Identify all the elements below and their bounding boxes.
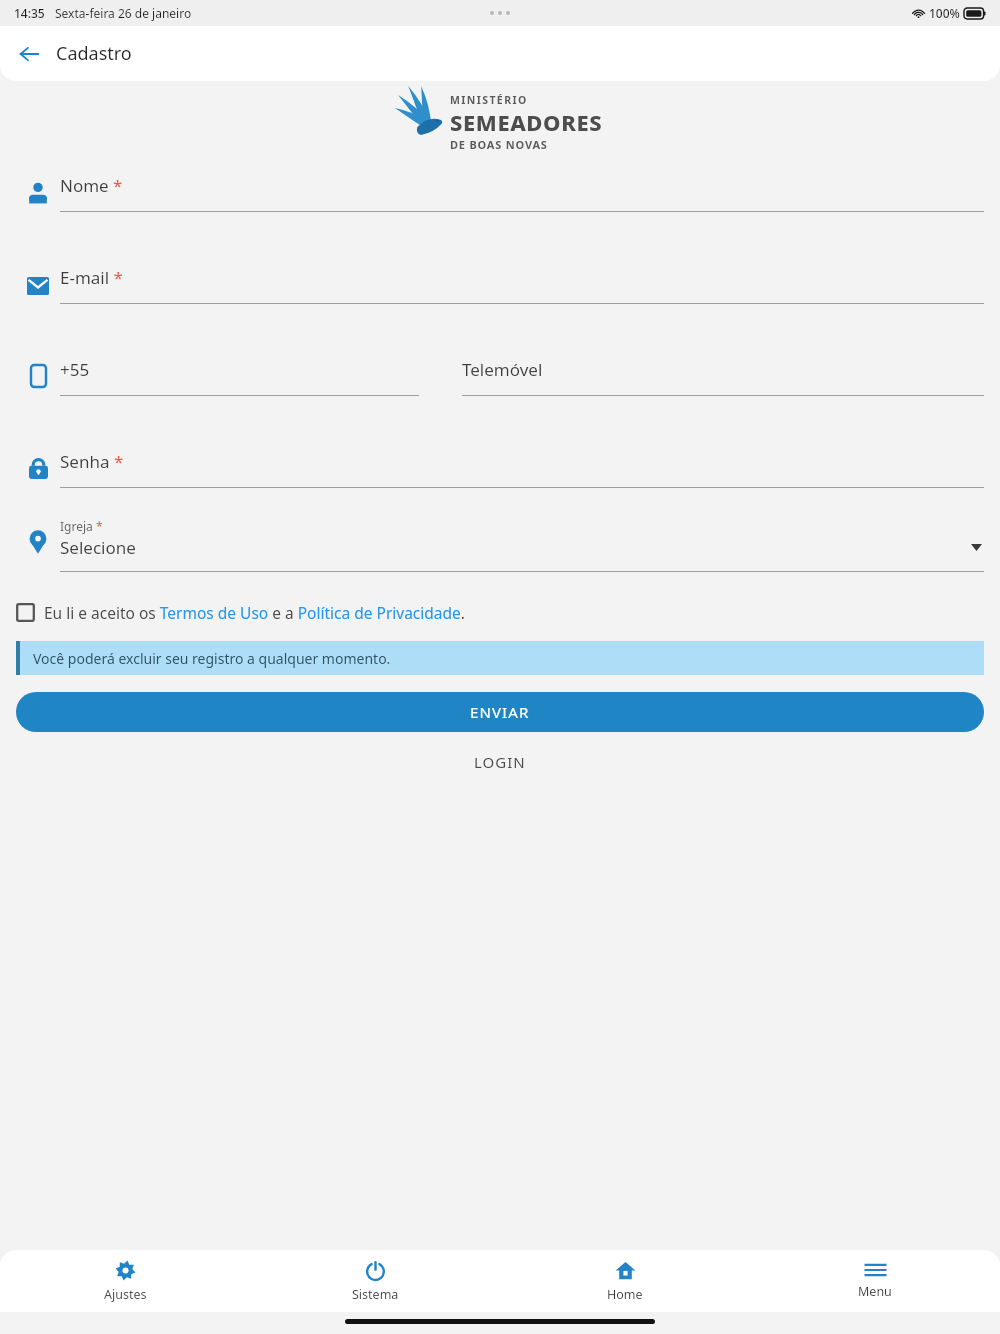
- button[interactable]: Senha *: [60, 450, 984, 488]
- button[interactable]: Back: [8, 33, 50, 75]
- button[interactable]: Menu: [750, 1250, 1000, 1312]
- staticText: Nome *: [60, 174, 123, 197]
- staticText: Sistema: [352, 1286, 399, 1303]
- staticText: Selecione: [60, 536, 136, 559]
- staticText: 100%: [929, 5, 960, 21]
- staticText: SEMEADORES: [450, 107, 603, 137]
- staticText: 14:35: [14, 5, 45, 21]
- staticText: Home: [607, 1286, 643, 1303]
- staticText: E-mail *: [60, 266, 123, 289]
- staticText: Sexta-feira 26 de janeiro: [55, 5, 192, 21]
- button[interactable]: ENVIAR: [16, 692, 984, 732]
- button[interactable]: Home: [500, 1250, 750, 1312]
- staticText: Ajustes: [104, 1286, 147, 1303]
- staticText: Eu li e aceito os Termos de Uso e a Polí…: [44, 602, 465, 623]
- staticText: Você poderá excluir seu registro a qualq…: [33, 649, 391, 668]
- button[interactable]: Nome *: [60, 174, 984, 212]
- button[interactable]: +55: [60, 358, 419, 396]
- staticText: DE BOAS NOVAS: [450, 137, 548, 152]
- button[interactable]: Ajustes: [0, 1250, 250, 1312]
- staticText: Menu: [858, 1283, 892, 1300]
- staticText: MINISTÉRIO: [450, 93, 528, 107]
- button[interactable]: LOGIN: [454, 746, 546, 778]
- staticText: +55: [60, 358, 90, 381]
- staticText: Telemóvel: [462, 358, 543, 381]
- button[interactable]: E-mail *: [60, 266, 984, 304]
- button[interactable]: Telemóvel: [462, 358, 984, 396]
- staticText: Senha *: [60, 450, 124, 473]
- staticText: Igreja *: [60, 518, 103, 534]
- staticText: ENVIAR: [470, 702, 530, 722]
- staticText: LOGIN: [474, 752, 526, 772]
- button[interactable]: Sistema: [250, 1250, 500, 1312]
- staticText: Cadastro: [56, 41, 132, 66]
- button[interactable]: Igreja *: [60, 518, 984, 572]
- button[interactable]: Eu li e aceito os Termos de Uso e a Polí…: [16, 602, 984, 623]
